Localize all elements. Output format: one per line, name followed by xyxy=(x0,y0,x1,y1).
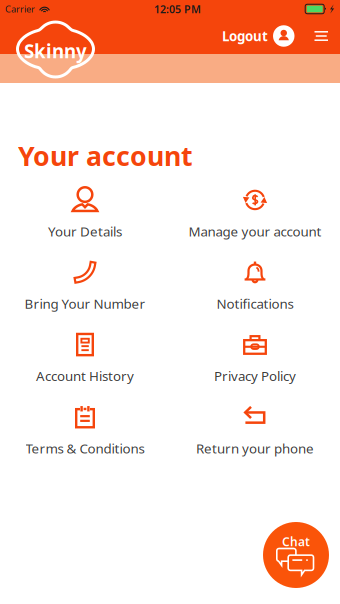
button[interactable]: Chat xyxy=(263,522,329,588)
staticText: Notifications xyxy=(216,295,293,312)
button[interactable]: Account History xyxy=(0,322,170,394)
button[interactable]: Terms & Conditions xyxy=(0,394,170,467)
staticText: Terms & Conditions xyxy=(25,439,144,457)
button[interactable]: Logout xyxy=(219,18,304,54)
staticText: Return your phone xyxy=(196,439,314,457)
button[interactable]: Notifications xyxy=(170,250,340,322)
staticText: Chat xyxy=(282,533,310,549)
staticText: Your account xyxy=(18,138,193,173)
staticText: Manage your account xyxy=(188,222,321,240)
button[interactable]: Your Details xyxy=(0,177,170,250)
staticText: 12:05 PM xyxy=(154,2,201,16)
button[interactable]: Menu xyxy=(304,19,338,53)
button[interactable]: Bring Your Number xyxy=(0,250,170,322)
staticText: Account History xyxy=(36,367,134,385)
button[interactable]: Manage your account xyxy=(170,177,340,250)
staticText: Privacy Policy xyxy=(214,367,296,385)
staticText: Carrier xyxy=(5,3,35,15)
button[interactable]: Privacy Policy xyxy=(170,322,340,394)
staticText: Bring Your Number xyxy=(24,295,145,312)
button[interactable]: Return your phone xyxy=(170,394,340,467)
staticText: Your Details xyxy=(48,222,122,240)
staticText: Logout xyxy=(222,27,268,45)
staticText: Skinny xyxy=(24,39,87,63)
